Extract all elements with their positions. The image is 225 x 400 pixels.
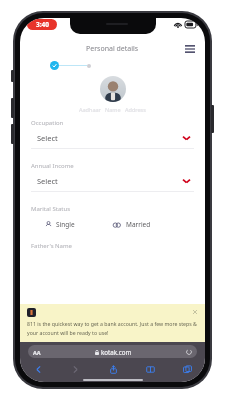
button[interactable]: Back	[30, 361, 46, 377]
staticText: Personal details	[86, 44, 139, 54]
button[interactable]: Married	[112, 220, 194, 229]
button[interactable]: Bookmarks	[142, 361, 158, 377]
staticText: Marital Status	[31, 205, 71, 213]
staticText: Occupation	[31, 119, 64, 127]
staticText: 3:40	[36, 20, 49, 29]
staticText: Name	[105, 106, 121, 113]
staticText: Annual Income	[31, 162, 74, 170]
staticText: Father's Name	[31, 242, 72, 250]
button[interactable]: Select	[31, 127, 194, 149]
staticText: AA	[33, 349, 41, 356]
staticText: Married	[126, 220, 151, 229]
staticText: your account will be ready to use!	[27, 329, 109, 336]
button[interactable]: Single	[45, 220, 112, 229]
staticText: kotak.com	[101, 348, 132, 356]
button[interactable]: Close	[191, 308, 198, 315]
staticText: Select	[37, 176, 58, 186]
staticText: Address	[125, 106, 146, 113]
button[interactable]: Tabs	[179, 361, 195, 377]
button[interactable]: Forward	[67, 361, 83, 377]
button[interactable]: Select	[31, 170, 194, 192]
button[interactable]: AA	[28, 345, 197, 358]
staticText: Single	[56, 220, 75, 229]
staticText: Select	[37, 133, 58, 143]
button[interactable]: Menu	[183, 42, 197, 56]
button[interactable]: Share	[105, 361, 121, 377]
staticText: 811 is the quickest way to get a bank ac…	[27, 320, 197, 327]
staticText: Aadhaar	[79, 106, 101, 113]
